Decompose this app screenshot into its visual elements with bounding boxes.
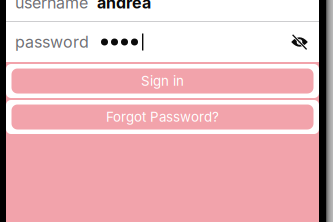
staticText: Forgot Password? [106,109,219,125]
staticText: password [15,32,89,52]
staticText: Sign in [141,73,184,89]
button[interactable]: Sign in [6,64,319,98]
button[interactable]: Hide password [288,33,311,51]
staticText: username [15,0,88,12]
button[interactable]: Forgot Password? [6,100,319,134]
staticText: andrea [97,0,151,12]
